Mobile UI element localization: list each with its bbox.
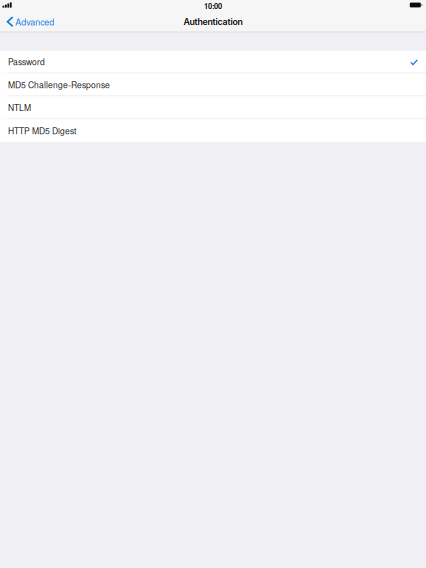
button[interactable]: Advanced (0, 12, 60, 31)
button[interactable]: Password (0, 50, 426, 73)
staticText: MD5 Challenge-Response (8, 78, 110, 90)
staticText: Password (8, 55, 45, 68)
button[interactable]: MD5 Challenge-Response (0, 73, 426, 96)
button[interactable]: HTTP MD5 Digest (0, 119, 426, 142)
staticText: 10:00 (204, 1, 222, 11)
button[interactable]: NTLM (0, 96, 426, 119)
staticText: Advanced (15, 15, 54, 28)
staticText: NTLM (8, 101, 31, 113)
staticText: Authentication (183, 16, 242, 27)
staticText: HTTP MD5 Digest (8, 124, 76, 137)
